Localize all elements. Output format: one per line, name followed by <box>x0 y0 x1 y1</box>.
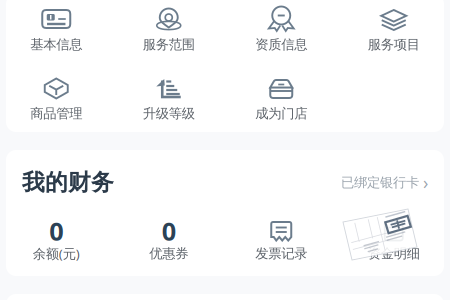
button[interactable]: 已绑定银行卡 <box>341 172 428 193</box>
staticText: 优惠券 <box>149 245 188 262</box>
staticText: 余额(元) <box>33 245 80 262</box>
button[interactable]: 商品管理 <box>0 69 112 126</box>
staticText: 资金明细 <box>368 245 420 262</box>
staticText: 服务项目 <box>368 36 420 53</box>
button[interactable]: 资金明细 <box>337 215 450 263</box>
button[interactable]: 基本信息 <box>0 0 112 57</box>
staticText: 资质信息 <box>255 36 307 53</box>
button[interactable]: 0 <box>0 215 112 263</box>
staticText: 商品管理 <box>30 105 82 122</box>
button[interactable]: 服务项目 <box>337 0 450 57</box>
button[interactable]: 发票记录 <box>225 215 337 263</box>
button[interactable]: 0 <box>112 215 225 263</box>
staticText: 服务范围 <box>143 36 195 53</box>
staticText: 基本信息 <box>30 36 82 53</box>
staticText: › <box>423 171 428 194</box>
staticText: 成为门店 <box>255 105 307 122</box>
staticText: 0 <box>49 214 63 248</box>
staticText: 0 <box>162 214 176 248</box>
staticText: 发票记录 <box>255 245 307 262</box>
button[interactable]: 服务范围 <box>112 0 225 57</box>
staticText: 升级等级 <box>143 105 195 122</box>
button[interactable]: 成为门店 <box>225 69 337 126</box>
staticText: 已绑定银行卡 <box>341 174 419 191</box>
button[interactable]: 升级等级 <box>112 69 225 126</box>
button[interactable]: 资质信息 <box>225 0 337 57</box>
staticText: 我的财务 <box>22 169 114 196</box>
